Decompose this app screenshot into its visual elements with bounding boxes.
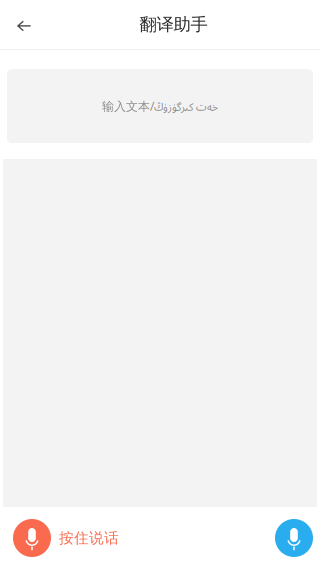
staticText: 翻译助手 (139, 14, 207, 35)
button[interactable]: Speak Uyghur (275, 507, 320, 565)
staticText: 输入文本/خەت كىرگۈزۈڭ (102, 98, 218, 114)
button[interactable]: 输入文本/خەت كىرگۈزۈڭ (0, 50, 320, 143)
button[interactable]: Back (0, 0, 46, 49)
staticText: 按住说话 (59, 529, 119, 547)
button[interactable]: 按住说话 (0, 507, 125, 565)
